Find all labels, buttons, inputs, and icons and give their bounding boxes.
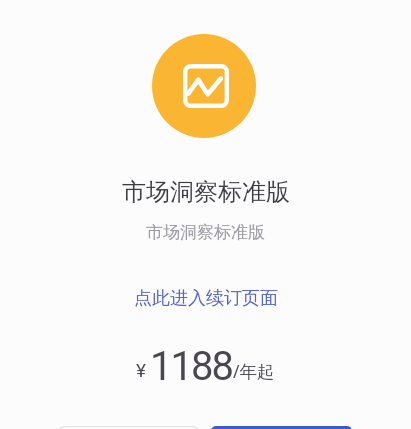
staticText: 市场洞察标准版 — [122, 177, 290, 207]
button[interactable]: Free trial — [57, 426, 200, 429]
staticText: 1188 — [150, 343, 232, 390]
button[interactable]: Market insight app icon — [152, 34, 256, 138]
staticText: 市场洞察标准版 — [146, 222, 265, 243]
button[interactable]: 点此进入续订页面 — [132, 286, 280, 311]
staticText: /年起 — [233, 359, 275, 383]
button[interactable]: Buy now — [211, 426, 352, 429]
staticText: 点此进入续订页面 — [134, 287, 278, 310]
staticText: ¥ — [136, 359, 146, 381]
